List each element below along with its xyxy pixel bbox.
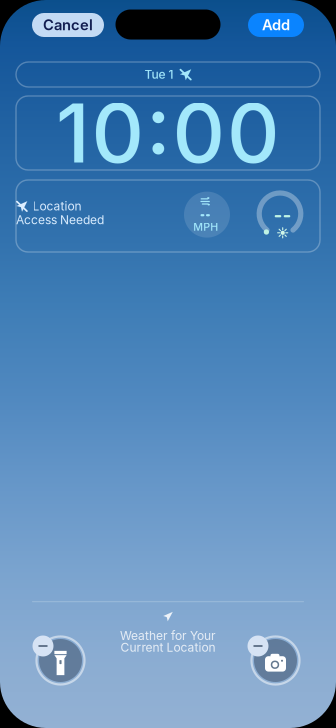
staticText: Tue 1 — [144, 67, 173, 82]
staticText: MPH — [193, 220, 218, 233]
button[interactable]: Remove flashlight control — [31, 631, 89, 689]
button[interactable]: Cancel — [32, 13, 104, 37]
staticText: Add — [262, 16, 290, 34]
button[interactable]: Remove camera control — [246, 631, 304, 689]
button[interactable]: Add — [248, 13, 304, 37]
staticText: Cancel — [43, 16, 93, 34]
staticText: Weather for Your — [120, 628, 216, 643]
staticText: Access Needed — [16, 212, 104, 227]
staticText: 10:00 — [56, 84, 280, 182]
staticText: Current Location — [120, 640, 215, 654]
staticText: Location — [33, 199, 82, 213]
